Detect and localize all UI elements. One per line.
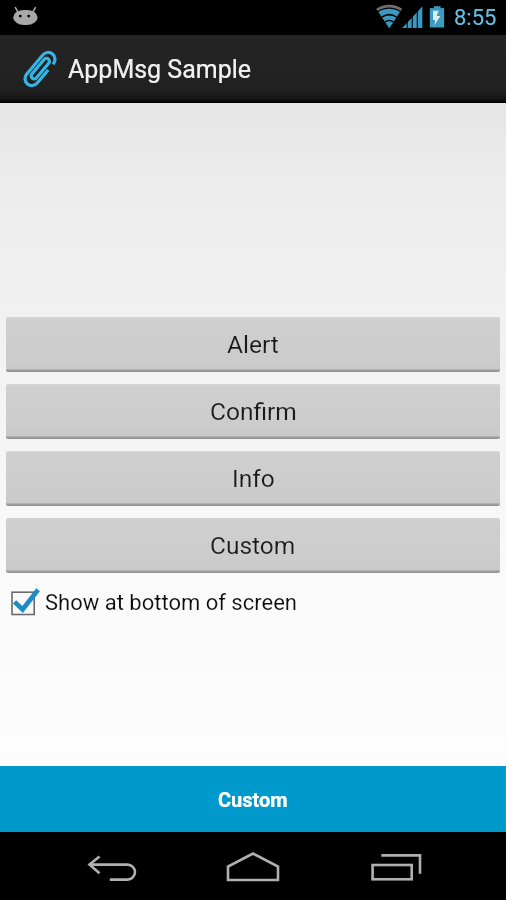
staticText: Custom	[218, 788, 288, 811]
staticText: Info	[232, 464, 275, 493]
button[interactable]: Info	[6, 451, 500, 506]
button[interactable]: Confirm	[6, 384, 500, 439]
button[interactable]: Show at bottom of screen	[0, 584, 506, 622]
staticText: AppMsg Sample	[68, 55, 252, 84]
staticText: Custom	[210, 531, 296, 560]
button[interactable]: Custom	[6, 518, 500, 573]
button[interactable]: Custom	[0, 766, 506, 832]
staticText: 8:55	[454, 5, 497, 31]
staticText: Show at bottom of screen	[45, 590, 297, 616]
button[interactable]: Alert	[6, 317, 500, 372]
staticText: Alert	[227, 330, 279, 359]
button[interactable]: Recent apps	[350, 839, 440, 895]
button[interactable]: Back	[67, 839, 157, 895]
button[interactable]: Home	[208, 839, 298, 895]
staticText: Confirm	[210, 397, 297, 426]
